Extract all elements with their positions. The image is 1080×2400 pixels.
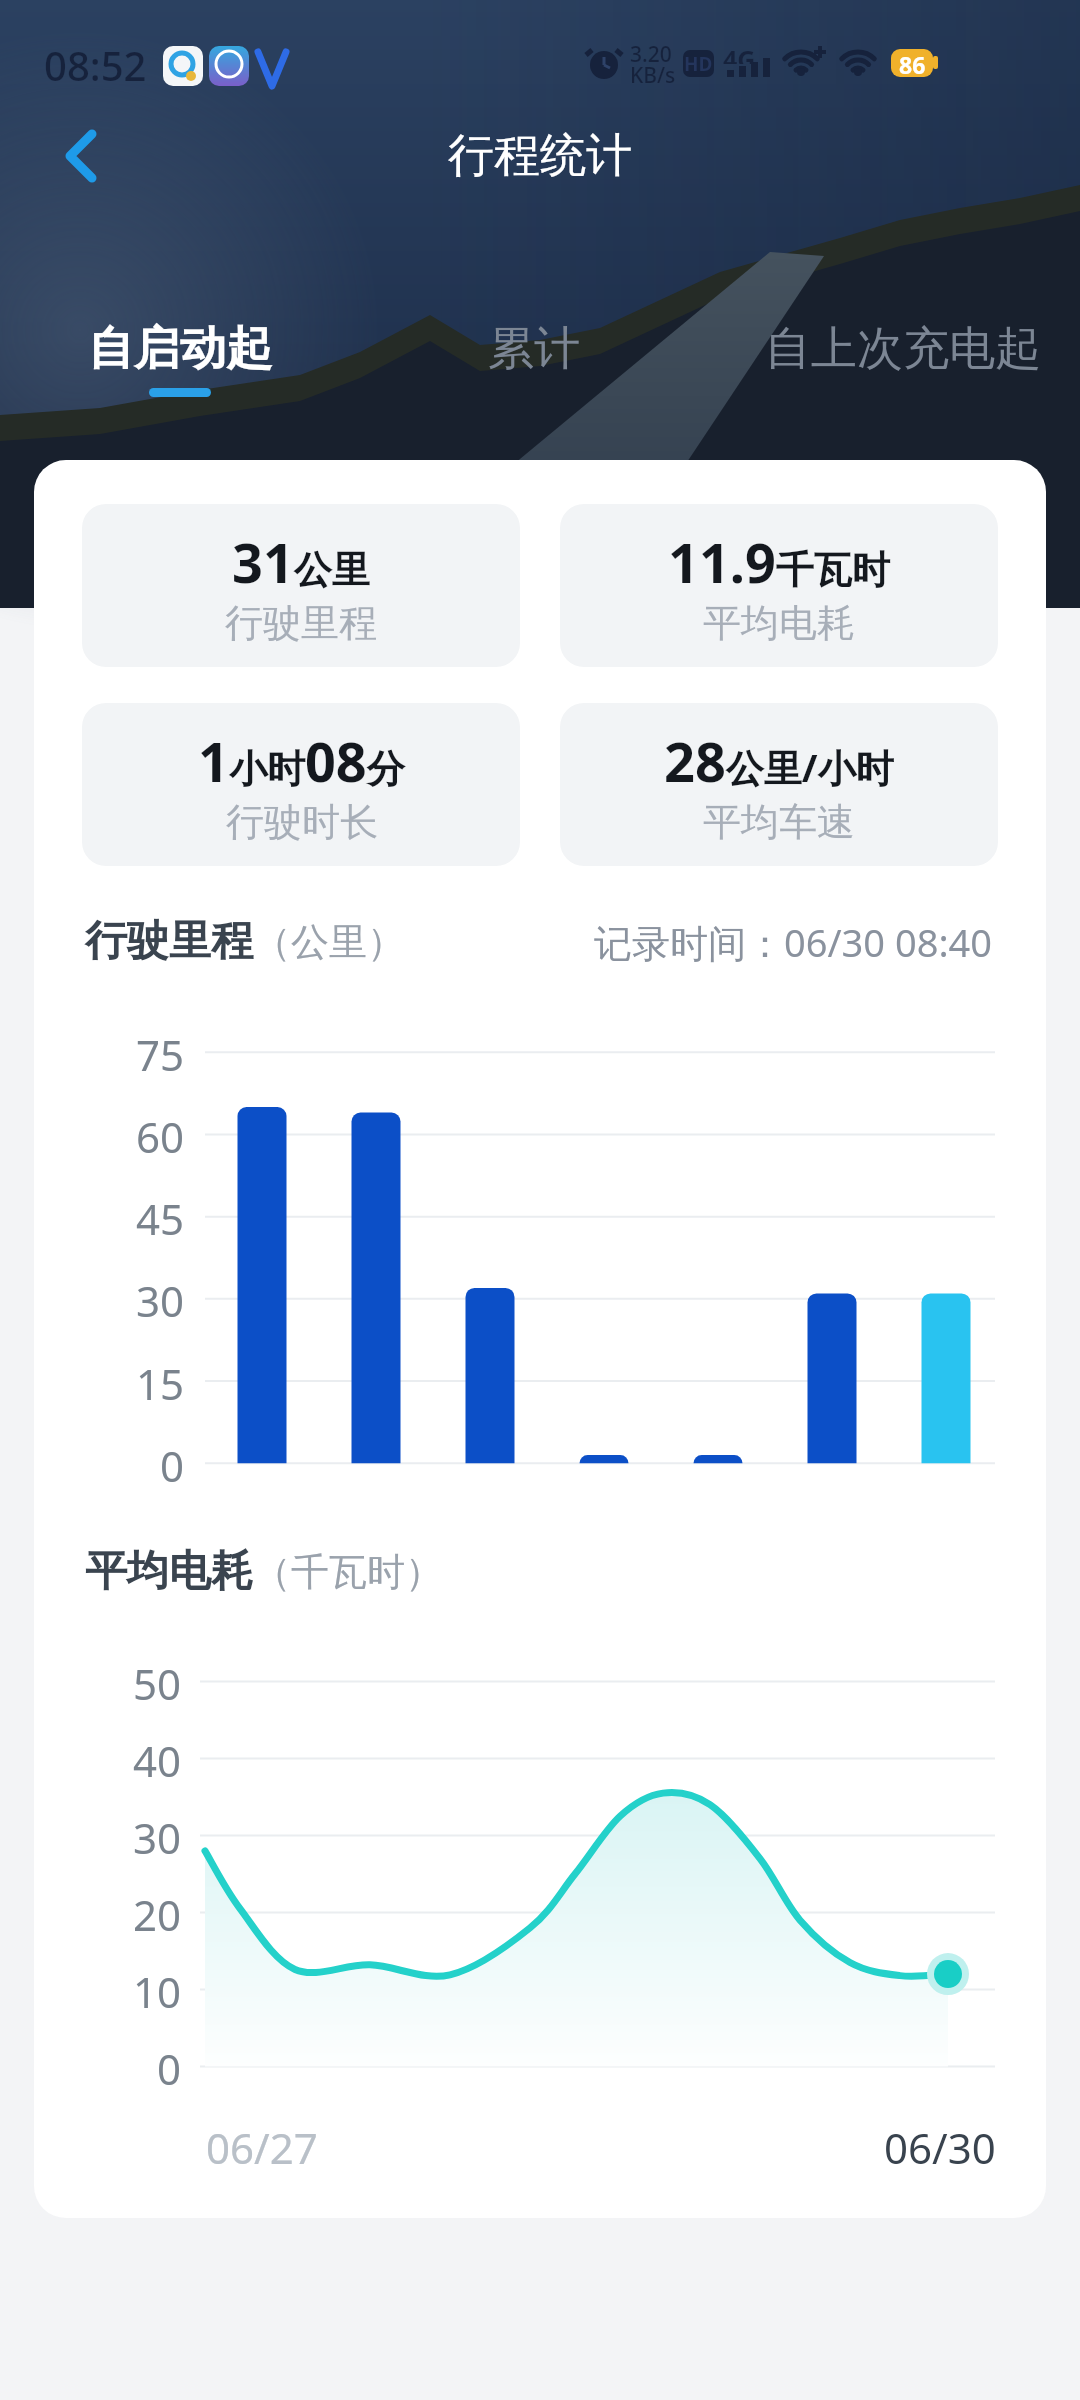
staticText: 08:52 (44, 38, 147, 86)
staticText: 平均电耗 (703, 599, 855, 647)
button[interactable]: 累计 (443, 318, 624, 380)
staticText: 自上次充电起 (765, 320, 1041, 378)
staticText: 30 (133, 1809, 182, 1861)
staticText: 10 (133, 1963, 182, 2015)
staticText: KB/s (630, 61, 676, 83)
staticText: 4G (723, 42, 756, 64)
staticText: 平均电耗（千瓦时） (85, 1545, 443, 1598)
button[interactable]: 31公里 (82, 504, 520, 667)
button[interactable] (50, 120, 120, 190)
staticText: 平均车速 (703, 798, 855, 846)
staticText: 行驶时长 (226, 798, 378, 846)
button[interactable]: 11.9千瓦时 (560, 504, 998, 667)
staticText: 30 (136, 1272, 185, 1324)
button[interactable]: 自启动起 (80, 318, 280, 380)
staticText: 75 (136, 1026, 185, 1078)
staticText: 累计 (488, 320, 580, 378)
staticText: 40 (133, 1732, 182, 1784)
staticText: 50 (133, 1655, 182, 1707)
staticText: 3.20 (630, 40, 672, 62)
staticText: 86 (899, 49, 926, 77)
staticText: 自启动起 (88, 320, 272, 378)
staticText: 31公里 (232, 525, 370, 599)
button[interactable]: 28公里/小时 (560, 703, 998, 866)
staticText: 0 (160, 1437, 185, 1489)
staticText: 06/30 (884, 2119, 996, 2171)
staticText: 45 (136, 1190, 185, 1242)
staticText: 11.9千瓦时 (668, 525, 890, 599)
button[interactable]: 1小时08分 (82, 703, 520, 866)
staticText: 记录时间：06/30 08:40 (594, 916, 993, 968)
staticText: 1小时08分 (198, 724, 405, 798)
staticText: 06/27 (206, 2119, 318, 2171)
button[interactable]: 自上次充电起 (764, 318, 1042, 380)
staticText: 60 (136, 1108, 185, 1160)
staticText: 28公里/小时 (664, 724, 894, 798)
staticText: 行驶里程（公里） (85, 915, 405, 968)
staticText: 行程统计 (448, 127, 632, 185)
staticText: HD (684, 51, 713, 77)
staticText: 15 (136, 1355, 185, 1407)
staticText: 0 (157, 2040, 182, 2092)
staticText: 20 (133, 1886, 182, 1938)
staticText: 行驶里程 (225, 599, 377, 647)
